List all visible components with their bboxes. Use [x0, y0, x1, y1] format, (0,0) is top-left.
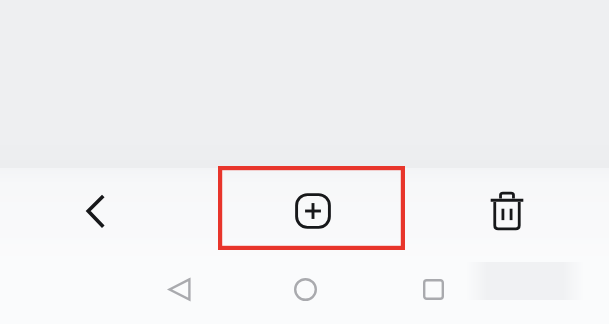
button[interactable]: Back [68, 180, 124, 242]
button[interactable]: Back [152, 266, 206, 312]
button[interactable]: Add [284, 182, 342, 240]
button[interactable]: Recent apps [406, 266, 460, 312]
button[interactable]: Delete [479, 182, 535, 240]
button[interactable]: Home [278, 266, 332, 312]
